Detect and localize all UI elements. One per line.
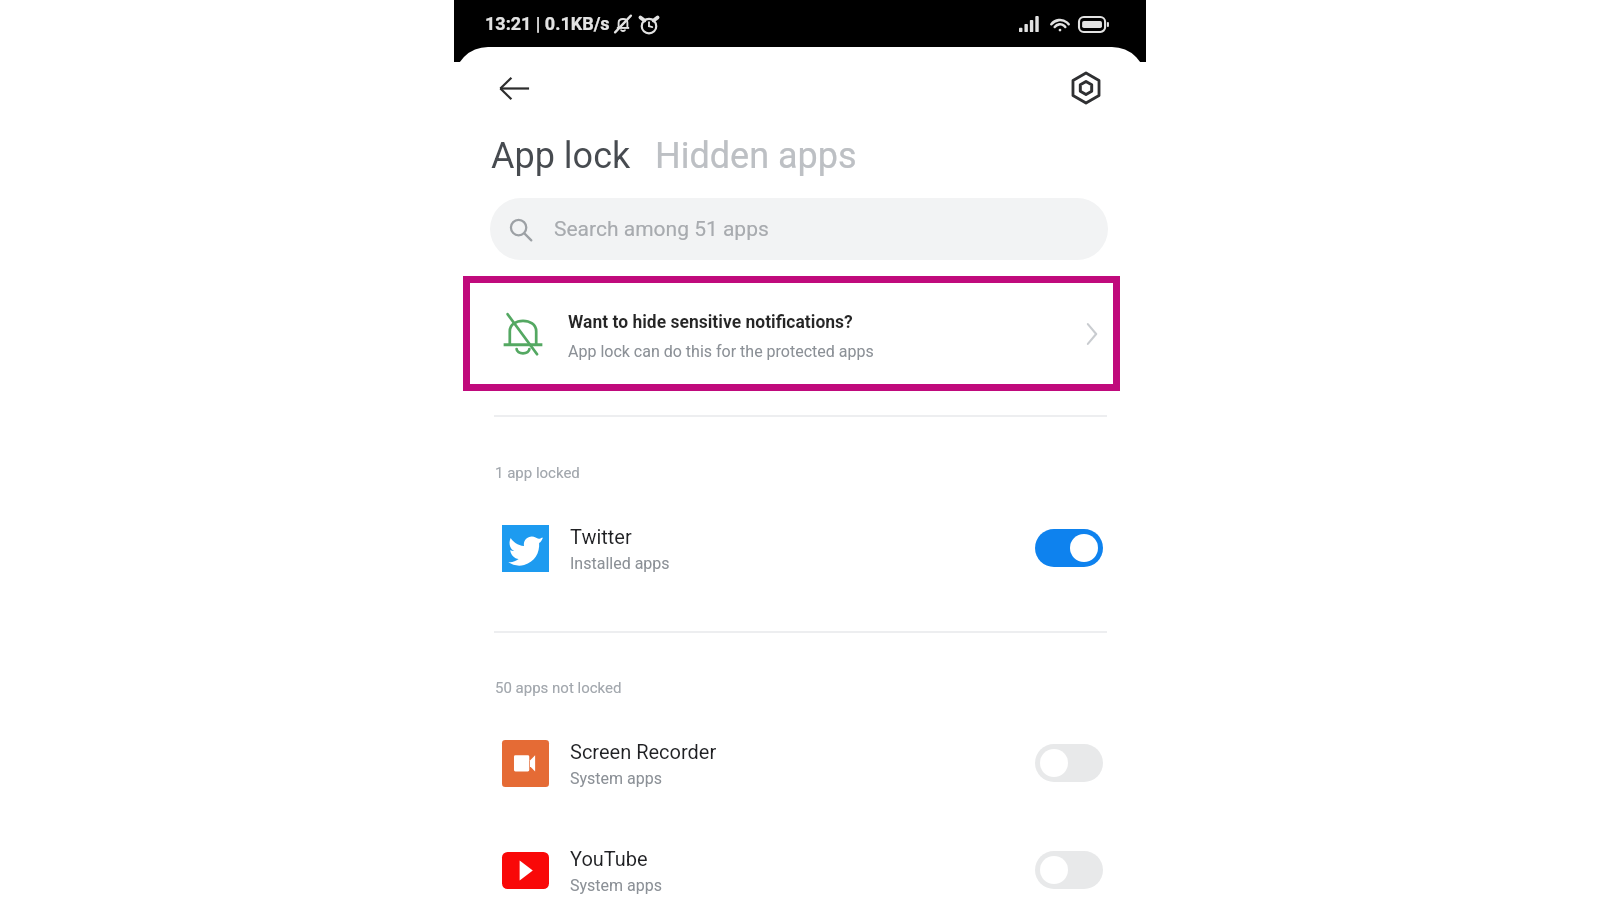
staticText: Hidden apps bbox=[655, 135, 857, 177]
button[interactable]: Disable app lock for Twitter bbox=[1035, 529, 1103, 567]
staticText: App lock can do this for the protected a… bbox=[568, 342, 874, 361]
button[interactable]: Enable app lock for YouTube bbox=[1035, 851, 1103, 889]
staticText: System apps bbox=[570, 876, 662, 895]
button[interactable]: Twitter bbox=[454, 513, 1146, 583]
staticText: Installed apps bbox=[570, 554, 670, 573]
button[interactable]: Back bbox=[491, 65, 537, 111]
button[interactable]: Hidden apps bbox=[655, 135, 857, 177]
staticText: 1 app locked bbox=[495, 464, 580, 482]
button[interactable]: App lock bbox=[491, 135, 631, 177]
staticText: Want to hide sensitive notifications? bbox=[568, 312, 853, 333]
button[interactable]: Screen Recorder bbox=[454, 728, 1146, 798]
staticText: App lock bbox=[491, 135, 631, 177]
staticText: YouTube bbox=[570, 847, 648, 870]
button[interactable]: Want to hide sensitive notifications? bbox=[470, 283, 1113, 384]
button[interactable]: Enable app lock for Screen Recorder bbox=[1035, 744, 1103, 782]
staticText: 50 apps not locked bbox=[495, 679, 622, 697]
button[interactable]: YouTube bbox=[454, 835, 1146, 900]
staticText: 13:21 | 0.1KB/s bbox=[485, 13, 610, 34]
button[interactable]: Search among 51 apps bbox=[490, 198, 1108, 260]
staticText: Twitter bbox=[570, 525, 632, 548]
button[interactable]: Settings bbox=[1063, 65, 1109, 111]
staticText: Screen Recorder bbox=[570, 740, 717, 763]
staticText: System apps bbox=[570, 769, 662, 788]
staticText: Search among 51 apps bbox=[554, 217, 769, 242]
